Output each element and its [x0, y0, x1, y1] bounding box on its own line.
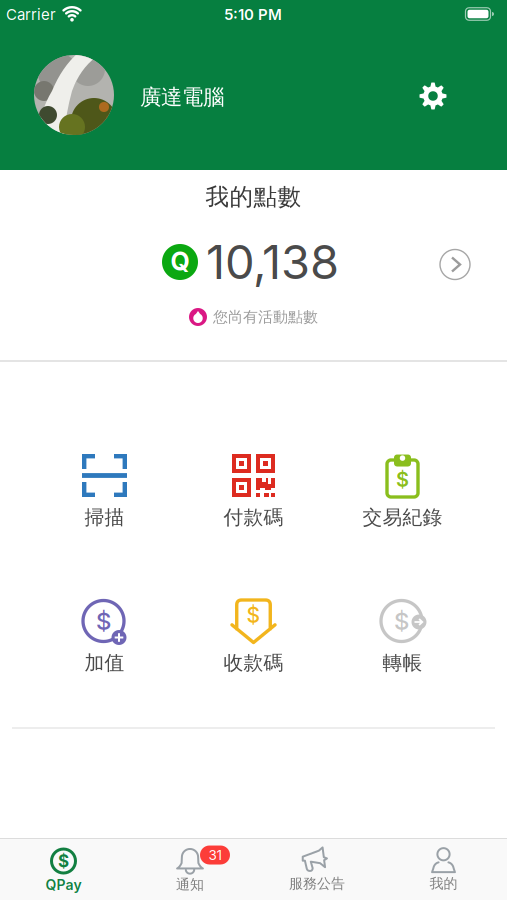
staticText: $ — [96, 606, 111, 635]
staticText: 廣達電腦 — [140, 83, 224, 110]
staticText: 您尚有活動點數 — [213, 308, 318, 326]
button[interactable]: Settings — [413, 76, 453, 116]
button[interactable]: 通知 — [135, 839, 245, 897]
staticText: 服務公告 — [289, 875, 345, 892]
button[interactable]: 付款碼 — [183, 453, 323, 561]
staticText: 通知 — [176, 876, 204, 893]
button[interactable]: $ — [34, 600, 174, 708]
staticText: QPay — [45, 876, 81, 893]
staticText: 掃描 — [84, 505, 124, 530]
staticText: 加值 — [84, 651, 124, 675]
staticText: 31 — [208, 847, 221, 863]
staticText: 轉帳 — [382, 651, 422, 675]
button[interactable]: $ — [332, 600, 472, 708]
button[interactable]: 您尚有活動點數 — [189, 308, 318, 326]
button[interactable]: $ — [183, 600, 323, 708]
staticText: 交易紀錄 — [362, 505, 442, 530]
button[interactable]: 服務公告 — [262, 839, 372, 897]
button[interactable]: $ — [332, 453, 472, 561]
staticText: 我的點數 — [205, 182, 301, 212]
button[interactable]: Q — [162, 234, 339, 290]
staticText: 付款碼 — [223, 505, 283, 530]
staticText: 5:10 PM — [224, 5, 282, 23]
staticText: Q — [170, 246, 189, 277]
button[interactable]: 掃描 — [34, 453, 174, 561]
staticText: Carrier — [6, 5, 56, 23]
staticText: 我的 — [429, 875, 457, 892]
staticText: $ — [58, 851, 69, 871]
button[interactable]: 我的 — [388, 839, 498, 897]
button[interactable]: $ — [8, 840, 118, 898]
staticText: 10,138 — [206, 234, 339, 290]
staticText: $ — [394, 606, 409, 635]
staticText: $ — [396, 467, 409, 492]
staticText: $ — [246, 602, 260, 628]
button[interactable]: Points detail — [440, 249, 470, 279]
staticText: 收款碼 — [223, 651, 283, 675]
